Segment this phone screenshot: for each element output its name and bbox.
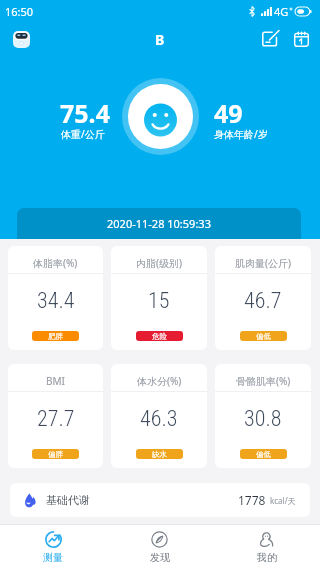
staticText: 4G <box>274 4 289 19</box>
button[interactable]: 发现 <box>106 525 213 569</box>
button[interactable]: Calendar <box>290 28 312 50</box>
staticText: 27.7 <box>37 406 75 432</box>
staticText: 偏胖 <box>48 450 63 459</box>
staticText: 偏低 <box>256 332 271 341</box>
button[interactable]: 体脂率(%) <box>8 246 103 350</box>
staticText: 骨骼肌率(%) <box>236 374 291 388</box>
button[interactable]: 体水分(%) <box>111 364 207 468</box>
staticText: 49 <box>214 96 243 130</box>
staticText: 34.4 <box>37 288 75 314</box>
staticText: 肌肉量(公斤) <box>235 256 291 270</box>
staticText: 30.8 <box>244 406 282 432</box>
staticText: BMI <box>46 374 65 388</box>
button[interactable]: 内脂(级别) <box>111 246 207 350</box>
staticText: B <box>155 30 165 49</box>
staticText: 测量 <box>43 551 63 564</box>
staticText: 偏低 <box>256 450 271 459</box>
staticText: 15 <box>148 288 170 314</box>
button[interactable]: 骨骼肌率(%) <box>215 364 311 468</box>
staticText: 我的 <box>257 551 277 564</box>
button[interactable]: 肌肉量(公斤) <box>215 246 311 350</box>
button[interactable]: 测量 <box>0 525 106 569</box>
staticText: 基础代谢 <box>46 493 90 507</box>
button[interactable]: Device <box>13 31 30 48</box>
staticText: 体水分(%) <box>137 374 182 388</box>
staticText: 肥胖 <box>48 332 63 341</box>
staticText: 体重/公斤 <box>61 127 105 141</box>
staticText: 体脂率(%) <box>33 256 78 270</box>
staticText: 危险 <box>152 332 167 341</box>
staticText: 身体年龄/岁 <box>214 127 268 141</box>
button[interactable]: BMI <box>8 364 103 468</box>
button[interactable]: Edit <box>259 28 281 50</box>
button[interactable]: 基础代谢 <box>10 483 310 517</box>
staticText: kcal/天 <box>270 495 296 506</box>
staticText: 缺水 <box>152 450 167 459</box>
staticText: 内脂(级别) <box>136 256 182 270</box>
staticText: 2020-11-28 10:59:33 <box>107 216 211 231</box>
staticText: 16:50 <box>5 4 34 19</box>
staticText: 1778 <box>238 492 266 508</box>
button[interactable]: 2020-11-28 10:59:33 <box>17 208 301 239</box>
staticText: 46.3 <box>140 406 178 432</box>
staticText: 46.7 <box>244 288 282 314</box>
staticText: 75.4 <box>60 96 110 130</box>
staticText: 发现 <box>150 551 170 564</box>
button[interactable]: 我的 <box>213 525 320 569</box>
